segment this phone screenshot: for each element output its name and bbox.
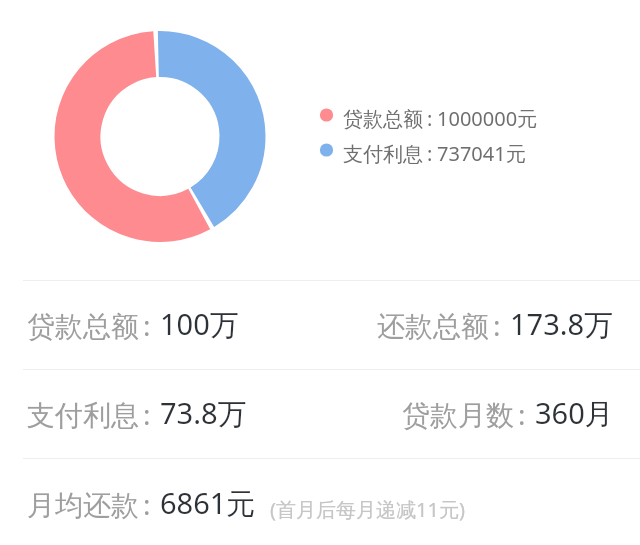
staticText: 还款总额 bbox=[377, 309, 489, 344]
staticText: : bbox=[427, 105, 433, 132]
button[interactable]: 支付利息 bbox=[0, 370, 320, 458]
staticText: : bbox=[493, 306, 501, 344]
staticText: 6861元 bbox=[160, 483, 256, 523]
staticText: 贷款总额 bbox=[343, 107, 423, 132]
staticText: (首月后每月递减11元) bbox=[270, 496, 465, 523]
staticText: 贷款总额 bbox=[27, 309, 139, 344]
staticText: 贷款月数 bbox=[402, 398, 514, 433]
staticText: 1000000元 bbox=[437, 105, 538, 132]
button[interactable]: 贷款月数 bbox=[320, 370, 640, 458]
staticText: : bbox=[143, 306, 151, 344]
staticText: 支付利息 bbox=[343, 142, 423, 167]
staticText: : bbox=[143, 395, 151, 433]
button[interactable]: 贷款构成饼图 bbox=[54, 30, 267, 243]
staticText: : bbox=[143, 485, 151, 523]
staticText: : bbox=[518, 395, 526, 433]
button[interactable]: 贷款总额 bbox=[318, 105, 538, 132]
button[interactable]: 月均还款 bbox=[0, 459, 640, 545]
staticText: 173.8万 bbox=[510, 304, 614, 344]
staticText: 737041元 bbox=[437, 140, 526, 167]
staticText: : bbox=[427, 140, 433, 167]
button[interactable]: 贷款总额 bbox=[0, 281, 320, 369]
staticText: 100万 bbox=[160, 304, 239, 344]
button[interactable]: 还款总额 bbox=[320, 281, 640, 369]
staticText: 73.8万 bbox=[160, 393, 247, 433]
staticText: 支付利息 bbox=[27, 398, 139, 433]
staticText: 360月 bbox=[535, 393, 614, 433]
staticText: 月均还款 bbox=[27, 488, 139, 523]
button[interactable]: 支付利息 bbox=[318, 140, 526, 167]
